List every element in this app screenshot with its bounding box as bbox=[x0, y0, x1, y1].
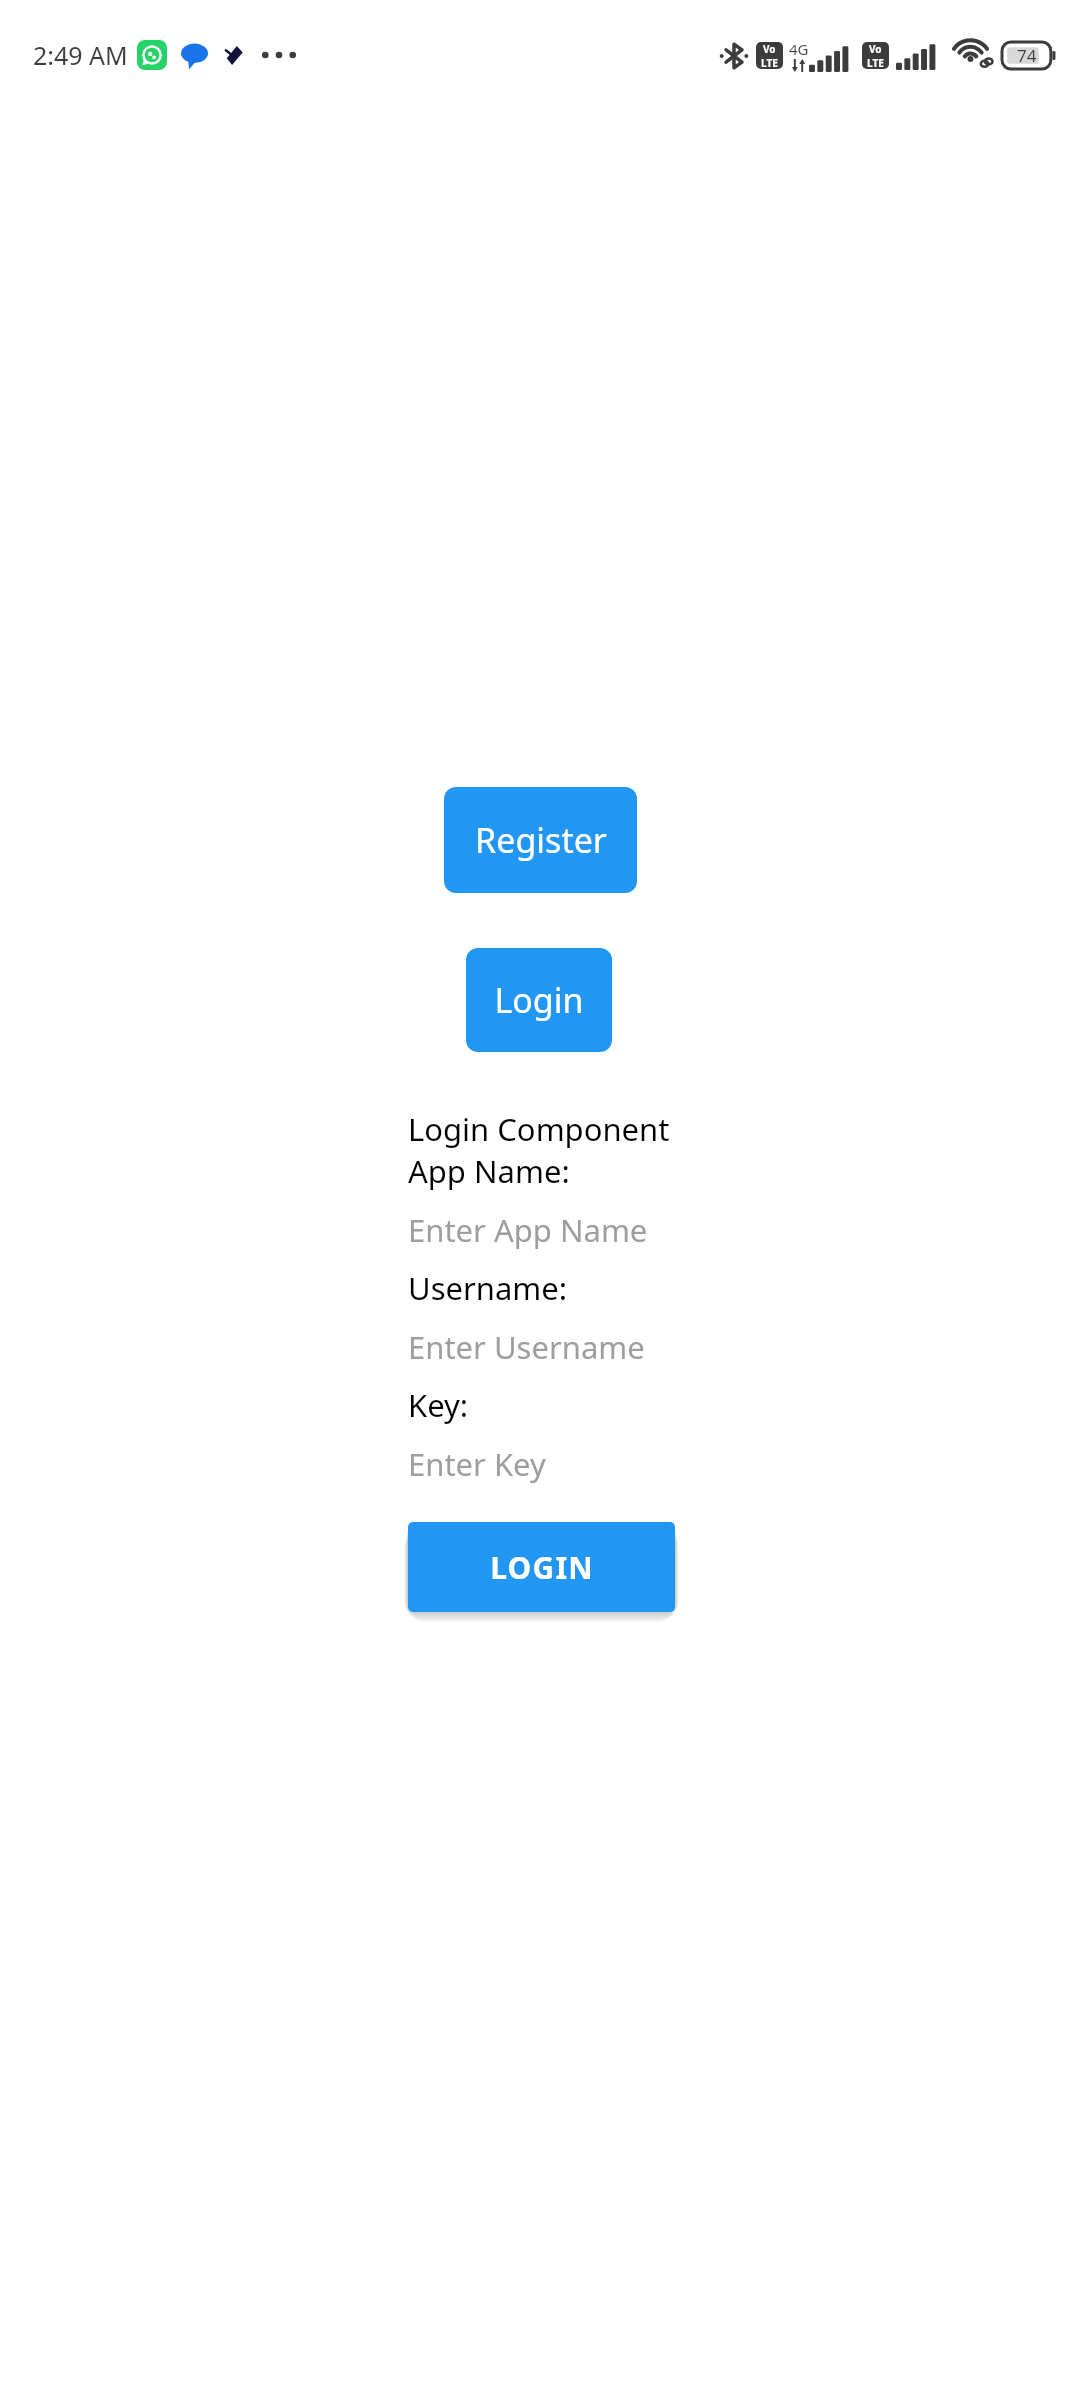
button[interactable]: Register bbox=[444, 787, 637, 893]
button[interactable]: LOGIN bbox=[408, 1522, 675, 1612]
staticText: Enter App Name bbox=[408, 1209, 648, 1251]
staticText: LOGIN bbox=[490, 1547, 594, 1588]
staticText: Vo bbox=[763, 42, 776, 56]
staticText: Register bbox=[475, 817, 607, 863]
staticText: 4G bbox=[789, 39, 809, 59]
staticText: 74 bbox=[1017, 44, 1037, 67]
button[interactable]: Login bbox=[466, 948, 612, 1052]
staticText: Login Component bbox=[408, 1108, 670, 1150]
staticText: App Name: bbox=[408, 1150, 570, 1192]
button[interactable]: Enter Username bbox=[408, 1324, 828, 1369]
staticText: LTE bbox=[761, 56, 778, 69]
staticText: Username: bbox=[408, 1267, 568, 1309]
staticText: Enter Key bbox=[408, 1443, 546, 1485]
button[interactable]: Enter App Name bbox=[408, 1207, 828, 1252]
staticText: Enter Username bbox=[408, 1326, 645, 1368]
staticText: 2:49 AM bbox=[33, 38, 128, 72]
staticText: Key: bbox=[408, 1384, 469, 1426]
staticText: Vo bbox=[869, 42, 882, 56]
button[interactable]: Enter Key bbox=[408, 1441, 828, 1486]
staticText: Login bbox=[494, 977, 584, 1023]
staticText: LTE bbox=[867, 56, 884, 69]
